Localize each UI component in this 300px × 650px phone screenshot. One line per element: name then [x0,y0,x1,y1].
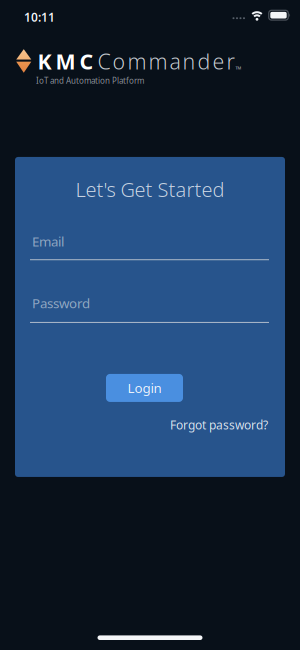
staticText: Let's Get Started [75,176,224,203]
button[interactable]: Login [106,374,183,402]
staticText: TM [234,65,241,70]
staticText: Login [127,379,161,397]
staticText: 10:11 [24,9,55,25]
staticText: K M C [37,47,93,75]
staticText: IoT and Automation Platform [36,75,144,86]
button[interactable]: Forgot password? [170,417,268,433]
button[interactable]: Email [15,232,285,260]
button[interactable]: Password [15,294,285,323]
staticText: Forgot password? [170,417,268,433]
staticText: Email [32,232,64,250]
staticText: Password [32,294,90,312]
staticText: C o m m a n d e r [93,47,234,75]
